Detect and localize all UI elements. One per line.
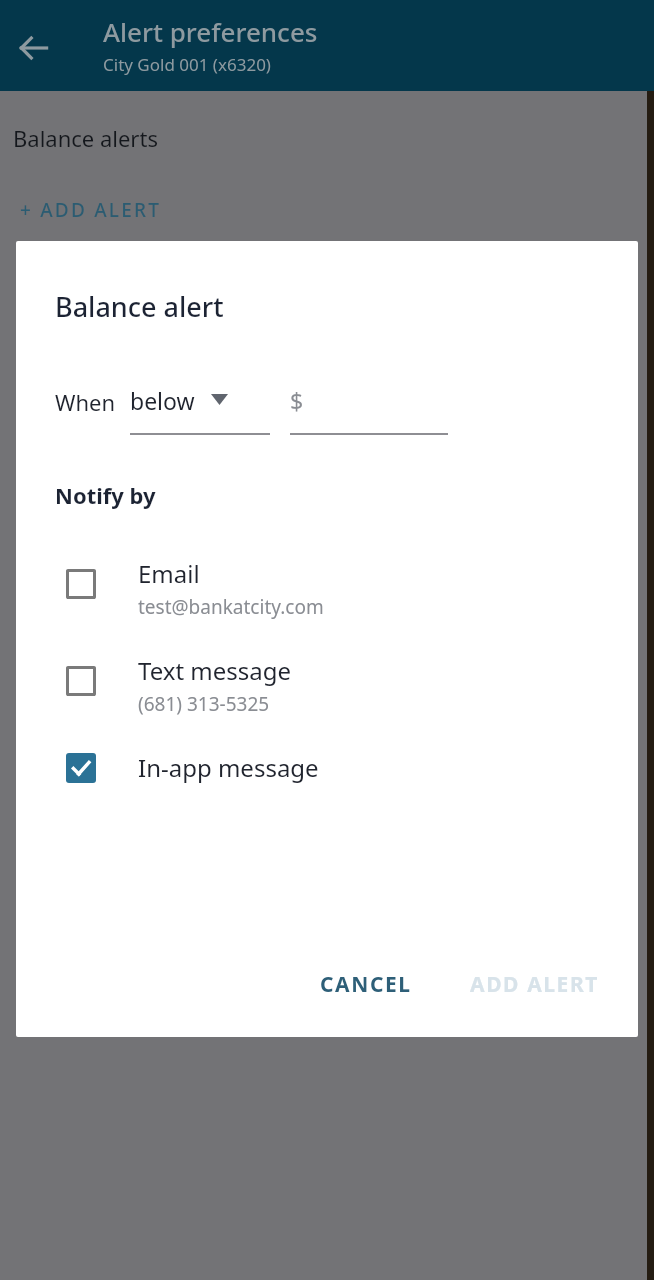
staticText: Alert preferences xyxy=(103,14,318,49)
button[interactable]: Email xyxy=(16,557,638,620)
button[interactable]: In-app message xyxy=(16,751,638,784)
staticText: When xyxy=(55,387,116,417)
staticText: + ADD ALERT xyxy=(20,197,162,223)
button[interactable]: CANCEL xyxy=(304,960,428,1009)
staticText: test@bankatcity.com xyxy=(138,594,324,620)
staticText: Balance alert xyxy=(55,288,224,325)
button[interactable]: $ xyxy=(290,383,448,435)
button[interactable]: Text message xyxy=(16,654,638,717)
staticText: CANCEL xyxy=(320,970,412,999)
staticText: Notify by xyxy=(55,480,156,510)
staticText: $ xyxy=(290,385,304,416)
staticText: Text message xyxy=(138,654,292,687)
staticText: (681) 313-5325 xyxy=(138,691,270,717)
button[interactable]: Back xyxy=(6,20,62,76)
button[interactable]: below xyxy=(130,383,270,435)
staticText: ADD ALERT xyxy=(470,970,600,999)
staticText: below xyxy=(130,385,195,416)
staticText: City Gold 001 (x6320) xyxy=(103,53,271,76)
staticText: In-app message xyxy=(138,751,319,784)
button[interactable]: ADD ALERT xyxy=(454,960,616,1009)
staticText: Email xyxy=(138,557,200,590)
staticText: Balance alerts xyxy=(13,123,158,153)
